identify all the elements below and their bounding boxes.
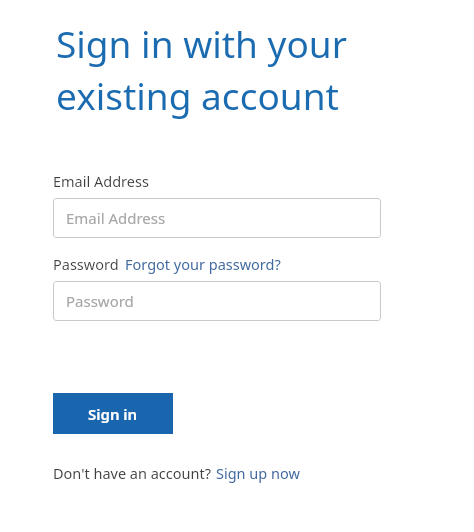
staticText: Password: [66, 291, 134, 311]
staticText: Password: [53, 254, 119, 274]
button[interactable]: Password input: [53, 281, 381, 321]
staticText: Email Address: [66, 208, 166, 228]
staticText: Email Address: [53, 171, 149, 191]
button[interactable]: Sign in: [53, 393, 173, 434]
staticText: Sign up now: [216, 463, 300, 483]
button[interactable]: Email Address input: [53, 198, 381, 238]
button[interactable]: Forgot your password?: [125, 254, 281, 274]
button[interactable]: Sign up now: [216, 463, 300, 483]
staticText: Sign in with your existing account: [56, 18, 348, 121]
staticText: Sign in: [88, 404, 138, 424]
staticText: Don't have an account?: [53, 463, 211, 483]
staticText: Forgot your password?: [125, 254, 281, 274]
